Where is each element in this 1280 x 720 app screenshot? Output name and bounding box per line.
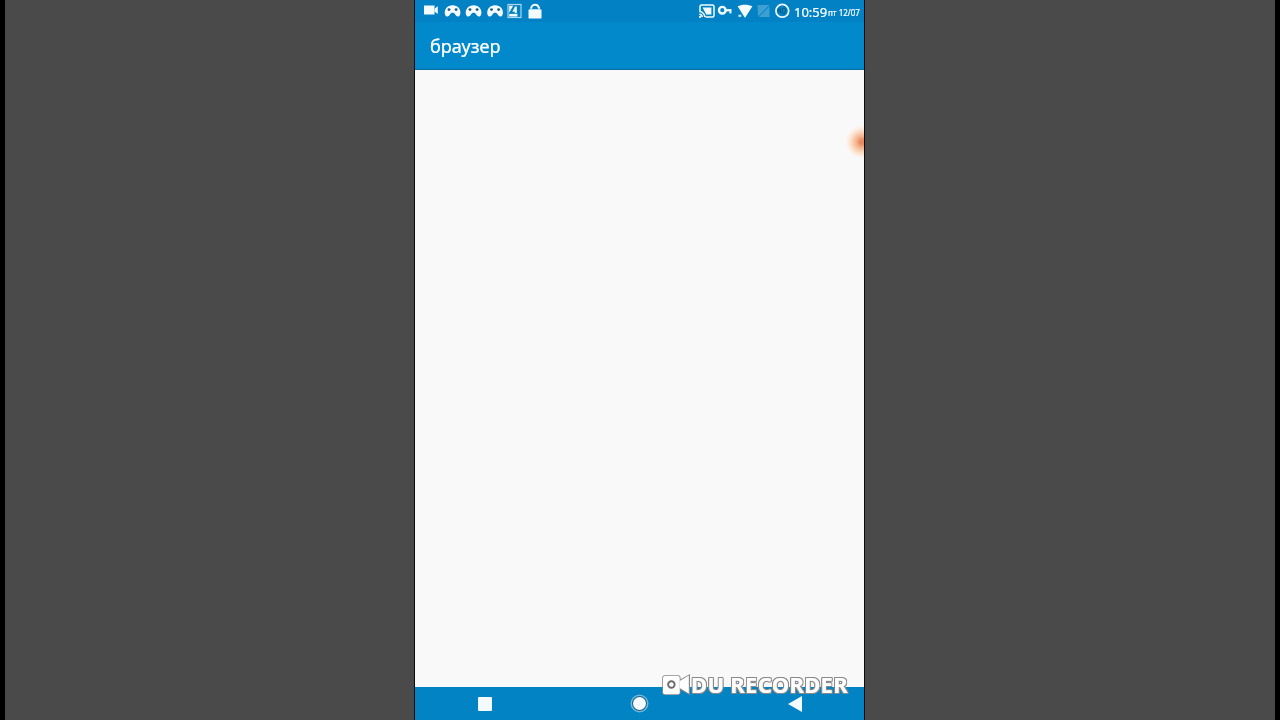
staticText: DU RECORDER (690, 668, 847, 698)
button[interactable]: Recent apps (415, 687, 564, 720)
staticText: браузер (430, 34, 501, 59)
staticText: DU RECORDER (691, 668, 848, 698)
staticText: DU RECORDER (692, 670, 849, 700)
button[interactable]: Back (714, 687, 864, 720)
staticText: DU RECORDER (692, 669, 849, 699)
staticText: 10:59 (794, 3, 828, 21)
staticText: DU RECORDER (690, 669, 847, 699)
staticText: DU RECORDER (690, 670, 847, 700)
staticText: DU RECORDER (691, 670, 848, 700)
staticText: DU RECORDER (691, 669, 848, 699)
staticText: DU RECORDER (692, 668, 849, 698)
staticText: пт 12/07 (828, 7, 860, 18)
button[interactable]: Screen recorder (828, 108, 864, 176)
button[interactable]: Home (564, 687, 714, 720)
